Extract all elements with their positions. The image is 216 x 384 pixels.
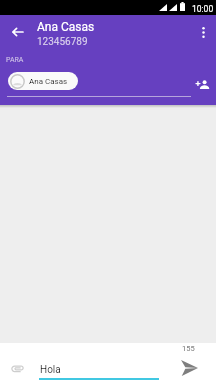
staticText: 123456789	[37, 36, 88, 48]
staticText: Ana Casas	[37, 20, 95, 34]
button[interactable]: Add recipient	[191, 73, 213, 95]
staticText: Hola	[40, 364, 61, 376]
button[interactable]: Ana Casas	[8, 72, 78, 90]
button[interactable]: Back	[5, 20, 29, 44]
staticText: 155	[182, 344, 195, 353]
button[interactable]: Attach file	[5, 356, 29, 380]
button[interactable]: Send	[178, 356, 201, 379]
staticText: Ana Casas	[29, 77, 68, 86]
button[interactable]: More options	[191, 20, 215, 44]
staticText: 10:00	[192, 4, 214, 14]
staticText: PARA	[6, 56, 24, 64]
